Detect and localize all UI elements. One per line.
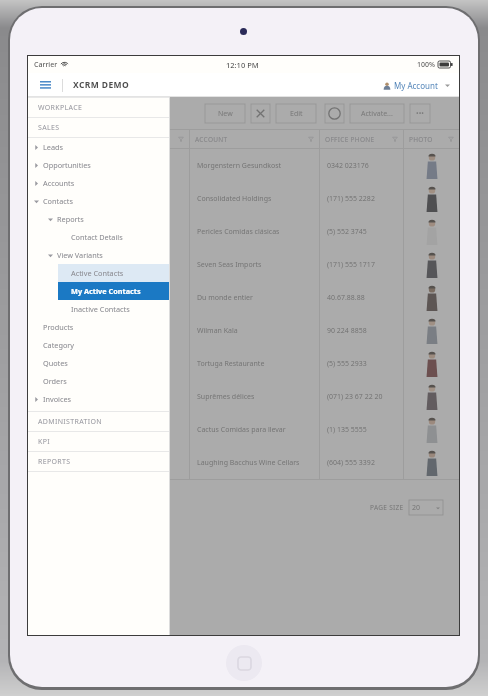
staticText: (171) 555 1717 <box>327 260 375 270</box>
button[interactable]: Delete <box>251 104 270 123</box>
staticText: 40.67.88.88 <box>327 293 365 303</box>
staticText: ACCOUNT <box>195 135 228 144</box>
staticText: Contacts <box>43 196 73 206</box>
button[interactable]: REPORTS <box>28 452 170 472</box>
staticText: My Account <box>394 80 438 91</box>
button[interactable]: Accounts <box>28 174 170 192</box>
staticText: Tortuga Restaurante <box>197 359 265 369</box>
staticText: Products <box>43 322 74 332</box>
staticText: 20 <box>412 503 421 513</box>
button[interactable]: Edit <box>276 104 316 123</box>
staticText: Pericles Comidas clásicas <box>197 227 280 237</box>
staticText: Consolidated Holdings <box>197 194 272 204</box>
staticText: Reports <box>57 214 84 224</box>
staticText: Category <box>43 340 75 350</box>
button[interactable]: SALES <box>28 118 170 138</box>
staticText: Cactus Comidas para llevar <box>197 425 286 435</box>
staticText: Consolidated Holdings <box>35 194 110 204</box>
staticText: Laughing Bacchus Wine Cellars <box>197 458 300 468</box>
button[interactable]: Active Contacts <box>58 264 170 282</box>
staticText: 12:10 PM <box>226 60 259 70</box>
button[interactable]: Contacts <box>28 192 170 210</box>
button[interactable]: Pericles Comidas clásicas <box>28 215 459 248</box>
staticText: (1) 135 5555 <box>327 425 367 435</box>
button[interactable]: Tortuga Restaurante <box>28 347 459 380</box>
staticText: Morgenstern Gesundkost <box>35 161 120 171</box>
button[interactable]: Opportunities <box>28 156 170 174</box>
staticText: Leads <box>43 142 64 152</box>
staticText: (071) 23 67 22 20 <box>327 392 383 402</box>
staticText: NAME <box>33 135 53 144</box>
button[interactable]: KPI <box>28 432 170 452</box>
staticText: Seven Seas Imports <box>35 260 100 270</box>
button[interactable] <box>28 97 459 635</box>
button[interactable]: Contact Details <box>28 228 170 246</box>
button[interactable]: Refresh <box>325 104 344 123</box>
staticText: Active Contacts <box>71 268 124 278</box>
staticText: Du monde entier <box>197 293 253 303</box>
staticText: New <box>218 109 233 119</box>
button[interactable]: Du monde entier <box>28 281 459 314</box>
staticText: Contact Details <box>71 232 123 242</box>
staticText: Suprêmes délices <box>197 392 255 402</box>
staticText: Cactus Comidas para llevar <box>35 425 124 435</box>
button[interactable]: New <box>205 104 245 123</box>
button[interactable]: Invoices <box>28 390 170 408</box>
staticText: 90 224 8858 <box>327 326 367 336</box>
button[interactable]: Seven Seas Imports <box>28 248 459 281</box>
staticText: Wilman Kala <box>197 326 238 336</box>
button[interactable]: Morgenstern Gesundkost <box>28 149 459 182</box>
button[interactable]: Activate... <box>350 104 404 123</box>
staticText: Accounts <box>43 178 75 188</box>
staticText: XCRM DEMO <box>73 79 130 91</box>
staticText: Wilman Kala <box>35 326 76 336</box>
staticText: View Variants <box>57 250 103 260</box>
button[interactable]: Suprêmes délices <box>28 380 459 413</box>
button[interactable]: My Active Contacts <box>58 282 170 300</box>
staticText: ADMINISTRATION <box>38 417 103 427</box>
staticText: Laughing Bacchus Wine Cellars <box>35 458 138 468</box>
staticText: REPORTS <box>38 457 71 467</box>
button[interactable]: 20 <box>409 500 443 515</box>
staticText: My Active Contacts <box>71 286 141 296</box>
button[interactable]: Reports <box>28 210 170 228</box>
button[interactable]: ••• <box>410 104 430 123</box>
staticText: Activate... <box>361 109 393 119</box>
staticText: Seven Seas Imports <box>197 260 262 270</box>
button[interactable]: Wilman Kala <box>28 314 459 347</box>
button[interactable]: Consolidated Holdings <box>28 182 459 215</box>
staticText: ••• <box>416 109 424 119</box>
button[interactable]: ADMINISTRATION <box>28 412 170 432</box>
staticText: (171) 555 2282 <box>327 194 375 204</box>
staticText: Morgenstern Gesundkost <box>197 161 282 171</box>
button[interactable]: Cactus Comidas para llevar <box>28 413 459 446</box>
staticText: PAGE SIZE <box>370 503 404 512</box>
button[interactable]: Home <box>226 645 262 681</box>
button[interactable]: Leads <box>28 138 170 156</box>
button[interactable]: Inactive Contacts <box>28 300 170 318</box>
staticText: WORKPLACE <box>38 103 83 113</box>
button[interactable]: Laughing Bacchus Wine Cellars <box>28 446 459 479</box>
staticText: Pericles Comidas clásicas <box>35 227 118 237</box>
button[interactable]: View Variants <box>28 246 170 264</box>
button[interactable]: Quotes <box>28 354 170 372</box>
staticText: OFFICE PHONE <box>325 135 375 144</box>
staticText: PHOTO <box>409 135 433 144</box>
button[interactable]: Products <box>28 318 170 336</box>
staticText: Orders <box>43 376 67 386</box>
button[interactable]: Orders <box>28 372 170 390</box>
button[interactable]: Category <box>28 336 170 354</box>
staticText: Invoices <box>43 394 72 404</box>
button[interactable]: Open navigation menu <box>28 73 62 97</box>
staticText: Tortuga Restaurante <box>35 359 103 369</box>
button[interactable]: My Account <box>378 77 455 94</box>
button[interactable]: WORKPLACE <box>28 98 170 118</box>
staticText: (604) 555 3392 <box>327 458 375 468</box>
staticText: Inactive Contacts <box>71 304 130 314</box>
staticText: Carrier <box>34 60 58 70</box>
staticText: 0342 023176 <box>327 161 369 171</box>
staticText: 100% <box>417 60 435 70</box>
staticText: KPI <box>38 437 50 447</box>
staticText: Quotes <box>43 358 68 368</box>
staticText: Suprêmes délices <box>35 392 93 402</box>
